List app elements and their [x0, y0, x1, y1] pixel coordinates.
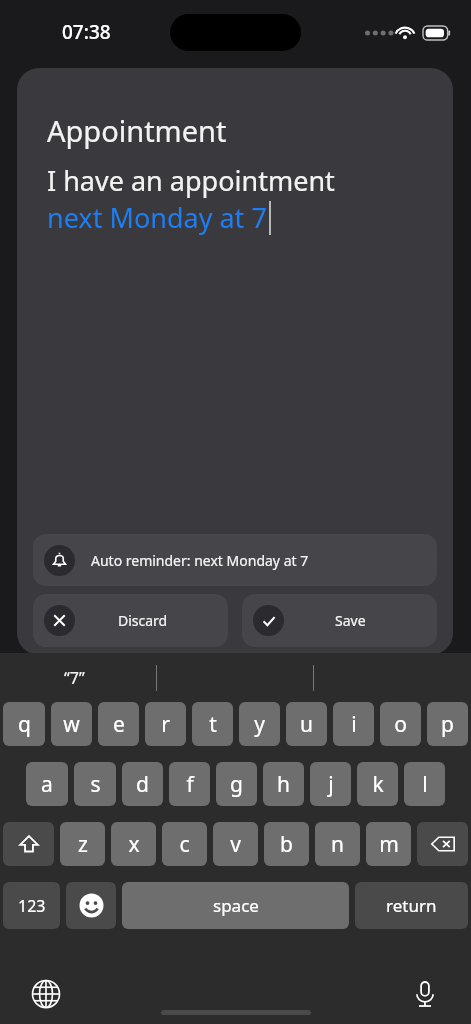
staticText: d	[136, 770, 149, 799]
staticText: return	[386, 894, 437, 917]
staticText: Save	[335, 611, 366, 630]
staticText: z	[78, 830, 88, 859]
button[interactable]: m	[366, 822, 411, 866]
button[interactable]: e	[98, 702, 139, 746]
staticText: q	[18, 710, 31, 739]
staticText: c	[179, 830, 190, 859]
staticText: l	[422, 770, 428, 799]
staticText: next Monday at 7	[47, 199, 267, 236]
staticText: i	[351, 710, 357, 739]
staticText: k	[372, 770, 384, 799]
button[interactable]: q	[3, 702, 45, 746]
staticText: m	[379, 830, 399, 859]
staticText: e	[113, 710, 125, 739]
button[interactable]: z	[60, 822, 105, 866]
button[interactable]: r	[145, 702, 186, 746]
button[interactable]: g	[216, 762, 257, 806]
button[interactable]: return	[355, 882, 468, 929]
button[interactable]: space	[122, 882, 349, 929]
button[interactable]: p	[427, 702, 468, 746]
staticText: h	[277, 770, 290, 799]
button[interactable]: t	[192, 702, 233, 746]
staticText: v	[230, 830, 241, 859]
button[interactable]: Shift	[3, 822, 54, 866]
staticText: t	[209, 710, 217, 739]
staticText: r	[161, 710, 170, 739]
staticText: Appointment	[47, 111, 227, 150]
staticText: 123	[18, 895, 46, 917]
button[interactable]: h	[263, 762, 304, 806]
button[interactable]: k	[357, 762, 398, 806]
button[interactable]: c	[162, 822, 207, 866]
button[interactable]: a	[26, 762, 68, 806]
button[interactable]: f	[169, 762, 210, 806]
staticText: I have an appointment	[47, 162, 335, 199]
button[interactable]: Backspace	[417, 822, 468, 866]
staticText: x	[128, 830, 140, 859]
button[interactable]: x	[111, 822, 156, 866]
button[interactable]: o	[380, 702, 421, 746]
button[interactable]: j	[310, 762, 351, 806]
button[interactable]: n	[315, 822, 360, 866]
button[interactable]: Auto reminder: next Monday at 7	[33, 534, 437, 586]
button[interactable]: Voice input	[407, 976, 443, 1012]
button[interactable]: Discard	[33, 594, 228, 647]
staticText: u	[300, 710, 313, 739]
staticText: space	[213, 894, 259, 917]
button[interactable]: Emoji	[66, 882, 116, 929]
staticText: p	[441, 710, 454, 739]
staticText: Discard	[118, 611, 168, 630]
staticText: a	[41, 770, 53, 799]
button[interactable]: b	[264, 822, 309, 866]
button[interactable]: u	[286, 702, 327, 746]
staticText: Auto reminder: next Monday at 7	[91, 551, 309, 570]
button[interactable]: Save	[242, 594, 437, 647]
button[interactable]: v	[213, 822, 258, 866]
staticText: s	[90, 770, 101, 799]
button[interactable]: Change keyboard language	[28, 976, 64, 1012]
button[interactable]: w	[51, 702, 92, 746]
button[interactable]: 123	[3, 882, 60, 929]
button[interactable]: i	[333, 702, 374, 746]
button[interactable]: d	[122, 762, 163, 806]
staticText: g	[230, 770, 243, 799]
staticText: w	[63, 710, 80, 739]
staticText: o	[394, 710, 407, 739]
button[interactable]: l	[404, 762, 445, 806]
staticText: j	[328, 770, 334, 799]
staticText: f	[186, 770, 194, 799]
staticText: n	[331, 830, 344, 859]
button[interactable]: y	[239, 702, 280, 746]
staticText: “7”	[64, 667, 85, 689]
staticText: 07:38	[62, 19, 111, 45]
staticText: b	[280, 830, 293, 859]
staticText: y	[254, 710, 265, 739]
button[interactable]: s	[74, 762, 116, 806]
